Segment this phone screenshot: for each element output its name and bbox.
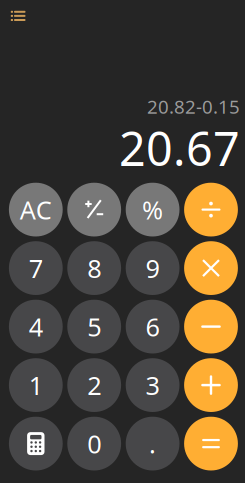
staticText: 20.67 [119, 117, 240, 179]
staticText: 20.82-0.15 [147, 94, 240, 119]
staticText: . [149, 427, 156, 460]
staticText: 6 [146, 310, 160, 343]
button[interactable]: 2 [67, 358, 121, 412]
staticText: 4 [29, 310, 43, 343]
button[interactable]: Plus or minus [67, 183, 121, 236]
button[interactable]: Equals [184, 417, 238, 470]
staticText: 7 [29, 251, 43, 285]
button[interactable]: History [0, 0, 32, 30]
button[interactable]: AC [9, 183, 63, 236]
button[interactable]: . [126, 417, 179, 470]
button[interactable]: 1 [9, 358, 63, 412]
button[interactable]: Calculator [9, 417, 63, 470]
staticText: 0 [87, 427, 101, 460]
button[interactable]: 8 [67, 241, 121, 295]
button[interactable]: % [126, 183, 179, 236]
button[interactable]: Subtract [184, 300, 238, 353]
button[interactable]: 4 [9, 300, 63, 353]
button[interactable]: 6 [126, 300, 179, 353]
button[interactable]: Add [184, 358, 238, 412]
button[interactable]: 3 [126, 358, 179, 412]
staticText: 8 [87, 251, 101, 285]
staticText: 3 [146, 368, 160, 402]
staticText: 1 [29, 368, 43, 402]
staticText: 2 [87, 368, 101, 402]
button[interactable]: 5 [67, 300, 121, 353]
button[interactable]: 0 [67, 417, 121, 470]
button[interactable]: Divide [184, 183, 238, 236]
staticText: 5 [87, 310, 101, 343]
button[interactable]: 7 [9, 241, 63, 295]
staticText: AC [20, 193, 52, 226]
button[interactable]: Multiply [184, 241, 238, 295]
button[interactable]: 9 [126, 241, 179, 295]
staticText: % [142, 193, 163, 226]
staticText: 9 [146, 251, 160, 285]
